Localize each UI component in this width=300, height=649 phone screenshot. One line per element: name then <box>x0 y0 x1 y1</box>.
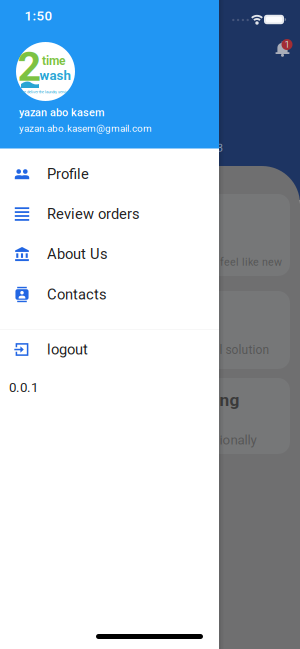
staticText: 1:50 <box>24 8 52 24</box>
button[interactable]: Contacts <box>0 0 300 649</box>
button[interactable]: logout <box>0 0 300 649</box>
staticText: Review orders <box>47 206 140 222</box>
button[interactable]: Profile <box>0 0 300 649</box>
staticText: time <box>42 54 65 68</box>
staticText: yazan abo kasem <box>19 106 105 119</box>
button[interactable]: Notifications <box>0 0 300 649</box>
staticText: Contacts <box>47 286 107 303</box>
staticText: 2 <box>17 43 41 90</box>
staticText: 0.0.1 <box>9 380 38 395</box>
staticText: ng <box>219 390 239 410</box>
button[interactable]: Review orders <box>0 0 300 649</box>
staticText: yazan.abo.kasem@gmail.com <box>19 123 152 134</box>
staticText: 3 <box>217 142 223 154</box>
staticText: logout <box>47 341 88 358</box>
staticText: Profile <box>47 166 89 182</box>
staticText: wash <box>39 68 70 83</box>
staticText: ionally <box>219 432 256 448</box>
staticText: l solution <box>219 343 269 357</box>
staticText: About Us <box>47 246 108 262</box>
staticText: we deliver the laundry service <box>21 90 70 94</box>
button[interactable]: About Us <box>0 0 300 649</box>
staticText: 1 <box>284 39 289 50</box>
staticText: feel like new <box>220 256 282 268</box>
